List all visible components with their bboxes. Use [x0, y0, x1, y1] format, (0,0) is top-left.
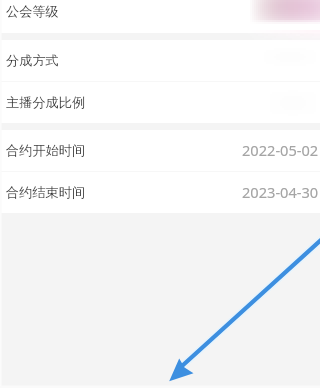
- staticText: 合约开始时间: [6, 142, 86, 159]
- button[interactable]: 合约开始时间: [0, 130, 320, 171]
- button[interactable]: 公会等级: [0, 0, 320, 28]
- staticText: 合约结束时间: [6, 184, 86, 201]
- button[interactable]: 主播分成比例: [0, 82, 320, 123]
- staticText: 主播分成比例: [6, 94, 86, 111]
- staticText: 公会等级: [6, 3, 59, 20]
- staticText: 2022-05-02: [242, 140, 319, 160]
- button[interactable]: 分成方式: [0, 40, 320, 81]
- staticText: 2023-04-30: [242, 182, 319, 202]
- button[interactable]: 合约结束时间: [0, 172, 320, 213]
- staticText: 分成方式: [6, 52, 59, 69]
